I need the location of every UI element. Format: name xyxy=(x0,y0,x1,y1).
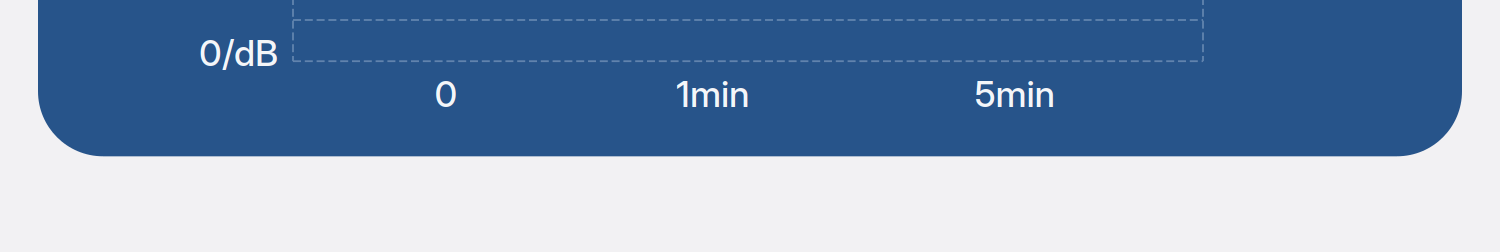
staticText: 5min xyxy=(974,72,1055,116)
staticText: 1min xyxy=(676,72,750,116)
staticText: 0 xyxy=(434,72,457,116)
staticText: 0/dB xyxy=(199,31,278,75)
button[interactable]: Noise level chart, 0 dB over 5 minutes xyxy=(38,0,1462,156)
